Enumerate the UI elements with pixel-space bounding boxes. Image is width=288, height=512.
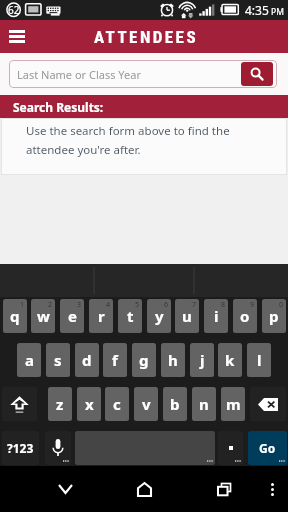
button[interactable]: Go: [248, 431, 287, 465]
button[interactable]: f: [103, 343, 127, 377]
staticText: 2: [48, 300, 53, 310]
staticText: b: [170, 394, 180, 414]
staticText: 4: [106, 300, 111, 310]
button[interactable]: Space: [75, 431, 215, 465]
button[interactable]: Search: [241, 62, 273, 86]
button[interactable]: p: [262, 299, 286, 333]
button[interactable]: w: [31, 299, 55, 333]
button[interactable]: o: [233, 299, 257, 333]
staticText: ATTENDEES: [94, 27, 199, 47]
staticText: s: [54, 350, 62, 370]
button[interactable]: n: [192, 387, 216, 421]
staticText: a: [25, 350, 34, 370]
staticText: 9: [250, 300, 255, 310]
button[interactable]: ?123: [2, 431, 39, 465]
staticText: ?123: [7, 440, 34, 456]
staticText: 5: [135, 300, 140, 310]
button[interactable]: r: [89, 299, 113, 333]
staticText: 8: [221, 300, 226, 310]
button[interactable]: Last Name or Class Year: [9, 60, 277, 88]
staticText: f: [112, 350, 118, 370]
button[interactable]: a: [17, 343, 41, 377]
button[interactable]: Back: [45, 466, 85, 512]
staticText: l: [257, 350, 262, 370]
button[interactable]: m: [221, 387, 245, 421]
button[interactable]: l: [247, 343, 271, 377]
button[interactable]: b: [163, 387, 187, 421]
button[interactable]: Backspace: [250, 387, 286, 421]
staticText: Use the search form above to find the at…: [26, 123, 259, 158]
staticText: 4:35: [245, 2, 269, 18]
staticText: g: [139, 350, 149, 370]
button[interactable]: Voice input: [45, 431, 71, 465]
staticText: y: [155, 306, 164, 326]
staticText: 7: [192, 300, 197, 310]
button[interactable]: Open navigation menu: [0, 20, 33, 53]
staticText: Go: [259, 440, 276, 456]
staticText: r: [98, 306, 105, 326]
staticText: d: [82, 350, 92, 370]
button[interactable]: Home: [124, 466, 164, 512]
button[interactable]: j: [190, 343, 214, 377]
staticText: x: [85, 394, 94, 414]
staticText: i: [214, 306, 219, 326]
staticText: Search Results:: [13, 99, 104, 115]
button[interactable]: Period: [218, 431, 243, 465]
button[interactable]: d: [75, 343, 99, 377]
staticText: j: [200, 350, 205, 370]
button[interactable]: y: [147, 299, 171, 333]
button[interactable]: Recent apps: [204, 466, 244, 512]
button[interactable]: s: [46, 343, 70, 377]
staticText: p: [269, 306, 279, 326]
button[interactable]: More options: [256, 466, 288, 512]
staticText: u: [182, 306, 192, 326]
staticText: n: [199, 394, 209, 414]
staticText: e: [68, 306, 77, 326]
staticText: 62: [8, 3, 20, 17]
staticText: w: [37, 306, 50, 326]
button[interactable]: v: [134, 387, 158, 421]
staticText: c: [113, 394, 121, 414]
staticText: t: [127, 306, 134, 326]
button[interactable]: i: [204, 299, 228, 333]
staticText: m: [226, 394, 241, 414]
button[interactable]: u: [175, 299, 199, 333]
staticText: h: [168, 350, 178, 370]
staticText: 6: [164, 300, 169, 310]
button[interactable]: z: [48, 387, 72, 421]
staticText: o: [240, 306, 250, 326]
staticText: Last Name or Class Year: [17, 67, 141, 82]
button[interactable]: k: [218, 343, 242, 377]
button[interactable]: c: [105, 387, 129, 421]
button[interactable]: t: [118, 299, 142, 333]
button[interactable]: h: [161, 343, 185, 377]
button[interactable]: x: [77, 387, 101, 421]
button[interactable]: Shift: [2, 387, 37, 421]
staticText: z: [56, 394, 64, 414]
staticText: 3: [77, 300, 82, 310]
staticText: q: [10, 306, 20, 326]
button[interactable]: g: [132, 343, 156, 377]
staticText: k: [225, 350, 235, 370]
staticText: 1: [20, 300, 25, 310]
staticText: 0: [279, 300, 284, 310]
button[interactable]: e: [60, 299, 84, 333]
button[interactable]: q: [3, 299, 27, 333]
staticText: PM: [271, 6, 284, 18]
staticText: v: [142, 394, 151, 414]
